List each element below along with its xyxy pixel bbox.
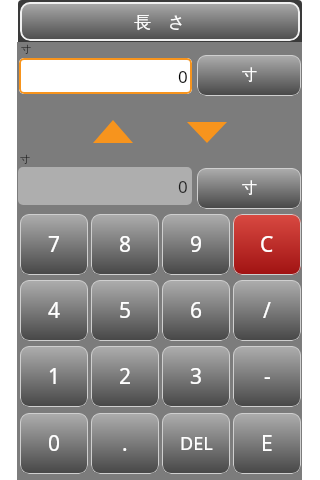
button[interactable]: - (233, 346, 301, 407)
staticText: 2 (119, 362, 132, 391)
staticText: 7 (48, 230, 61, 259)
staticText: 8 (119, 230, 132, 259)
staticText: 3 (190, 362, 203, 391)
button[interactable]: 4 (20, 280, 88, 341)
staticText: 0 (178, 175, 188, 198)
button[interactable]: E (233, 413, 301, 474)
staticText: 寸 (21, 43, 31, 56)
staticText: - (264, 362, 271, 391)
staticText: 寸 (242, 66, 257, 85)
staticText: DEL (180, 431, 213, 456)
staticText: / (263, 296, 271, 325)
staticText: . (122, 429, 128, 458)
button[interactable]: 1 (20, 346, 88, 407)
staticText: 0 (178, 65, 188, 88)
staticText: 6 (190, 296, 203, 325)
button[interactable]: 3 (162, 346, 230, 407)
staticText: 長 さ (134, 10, 186, 33)
button[interactable]: DEL (162, 413, 230, 474)
staticText: 4 (48, 296, 61, 325)
button[interactable]: 長 さ (20, 2, 300, 41)
staticText: 1 (48, 362, 61, 391)
button[interactable]: 0 (18, 167, 192, 205)
button[interactable]: 6 (162, 280, 230, 341)
staticText: 5 (119, 296, 132, 325)
button[interactable]: 7 (20, 214, 88, 275)
button[interactable]: . (91, 413, 159, 474)
button[interactable]: 5 (91, 280, 159, 341)
staticText: C (260, 230, 274, 259)
button[interactable] (182, 114, 232, 148)
button[interactable] (88, 114, 138, 148)
staticText: E (261, 429, 273, 458)
button[interactable]: / (233, 280, 301, 341)
staticText: 寸 (20, 153, 30, 166)
button[interactable]: 0 (19, 58, 192, 94)
staticText: 0 (48, 429, 61, 458)
button[interactable]: 寸 (197, 168, 301, 209)
button[interactable]: 9 (162, 214, 230, 275)
staticText: 9 (190, 230, 203, 259)
button[interactable]: 8 (91, 214, 159, 275)
button[interactable]: C (233, 214, 301, 275)
button[interactable]: 寸 (197, 55, 301, 96)
button[interactable]: 2 (91, 346, 159, 407)
staticText: 寸 (242, 179, 257, 198)
button[interactable]: 0 (20, 413, 88, 474)
